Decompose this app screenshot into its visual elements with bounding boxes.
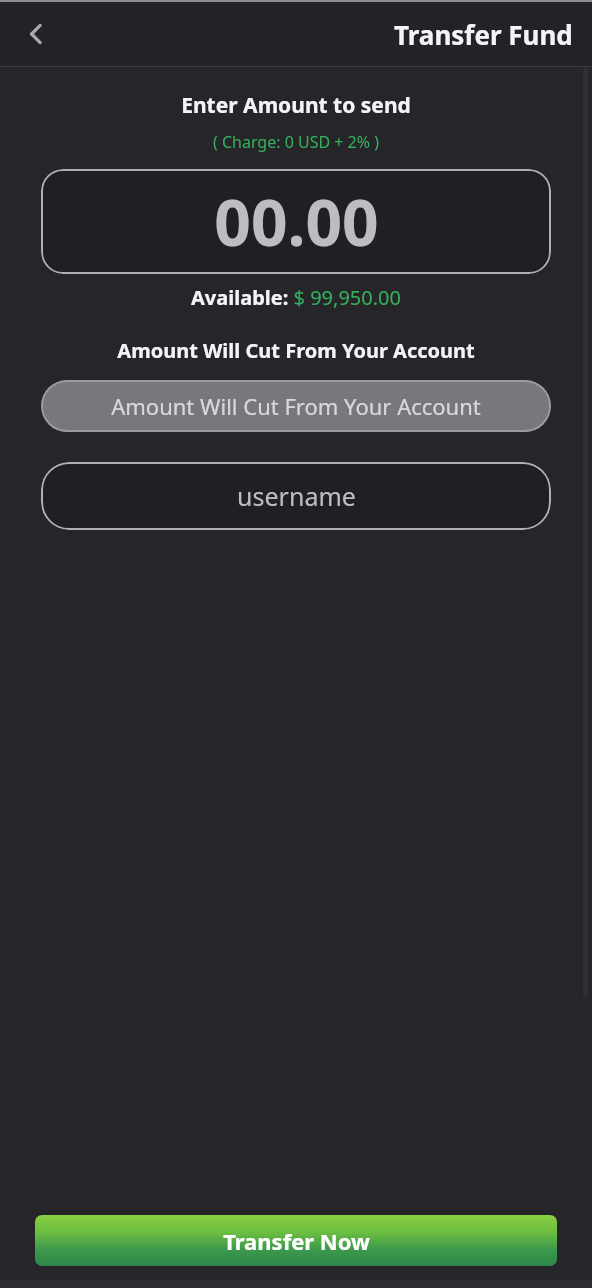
staticText: Amount Will Cut From Your Account [0,337,592,364]
staticText: 00.00 [214,178,379,265]
staticText: Transfer Now [223,1226,370,1256]
staticText: Amount Will Cut From Your Account [111,391,481,421]
staticText: username [237,479,356,513]
staticText: Available: $ 99,950.00 [0,284,592,311]
button[interactable]: Transfer Now [35,1215,557,1266]
button[interactable]: Back [10,8,62,60]
staticText: Enter Amount to send [0,91,592,120]
staticText: Transfer Fund [394,17,573,52]
staticText: ( Charge: 0 USD + 2% ) [0,131,592,153]
button[interactable]: username [41,462,551,530]
button[interactable]: 00.00 [41,169,551,274]
button[interactable]: Amount Will Cut From Your Account [41,380,551,432]
